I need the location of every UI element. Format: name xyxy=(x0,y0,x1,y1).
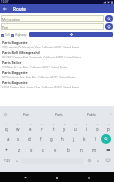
button[interactable]: 2 xyxy=(12,122,24,133)
button[interactable]: 6 xyxy=(59,122,70,133)
button[interactable]: Paris Baggette xyxy=(0,68,114,78)
staticText: l xyxy=(95,136,97,142)
staticText: 918 Lakeside Dr, Mountain View, Californ… xyxy=(2,46,80,48)
staticText: j xyxy=(73,136,75,142)
button[interactable]: Pari xyxy=(1,23,104,30)
button[interactable]: j xyxy=(68,133,79,144)
staticText: Route xyxy=(13,6,26,12)
button[interactable]: h xyxy=(57,133,68,144)
staticText: 1 xyxy=(6,123,8,126)
staticText: 0 xyxy=(108,123,110,126)
button[interactable]: c xyxy=(37,144,49,155)
staticText: Pari xyxy=(23,112,30,116)
button[interactable]: 0 xyxy=(103,122,114,133)
button[interactable]: m xyxy=(88,144,101,155)
staticText: x xyxy=(30,147,33,153)
button[interactable]: b xyxy=(62,144,75,155)
staticText: 9 xyxy=(97,123,99,126)
staticText: 3 xyxy=(30,123,32,126)
staticText: k xyxy=(83,136,86,142)
staticText: Paris Tailor xyxy=(2,60,22,65)
staticText: 7 xyxy=(75,123,77,126)
staticText: 6 xyxy=(64,123,66,126)
button[interactable]: Paris Baguette xyxy=(0,78,114,88)
staticText: u xyxy=(74,126,77,132)
button[interactable]: Back xyxy=(18,173,32,182)
button[interactable]: n xyxy=(75,144,88,155)
button[interactable]: Hide keyboard xyxy=(102,155,114,166)
button[interactable]: Comma xyxy=(13,155,20,166)
staticText: h xyxy=(61,136,64,142)
button[interactable]: 4 xyxy=(36,122,48,133)
staticText: 634 El Camino Real, Santa Clara, Califor… xyxy=(2,86,80,88)
staticText: n xyxy=(80,147,83,153)
button[interactable]: f xyxy=(35,133,46,144)
button[interactable]: 7 xyxy=(70,122,81,133)
button[interactable]: x xyxy=(25,144,37,155)
button[interactable]: My location xyxy=(1,15,104,22)
button[interactable]: z xyxy=(13,144,25,155)
button[interactable]: 3 xyxy=(24,122,36,133)
button[interactable]: l xyxy=(90,133,101,144)
staticText: b xyxy=(67,147,70,153)
button[interactable]: Paris Baguette xyxy=(0,38,114,48)
button[interactable]: Emoji xyxy=(85,155,94,166)
staticText: 2 xyxy=(17,123,19,126)
staticText: g xyxy=(50,136,53,142)
button[interactable]: Period xyxy=(94,155,102,166)
staticText: 300 University Ave, Palo Alto, Californi… xyxy=(2,76,76,78)
button[interactable]: 1 xyxy=(0,122,12,133)
button[interactable]: Back xyxy=(0,4,10,13)
button[interactable]: Recent apps xyxy=(82,173,96,182)
button[interactable]: Set location xyxy=(105,23,113,30)
staticText: z xyxy=(18,147,21,153)
button[interactable]: Pablo xyxy=(75,106,107,122)
button[interactable]: Pari xyxy=(10,106,43,122)
staticText: Paris xyxy=(55,112,63,116)
button[interactable]: Search xyxy=(101,134,111,144)
staticText: My location xyxy=(2,17,20,21)
staticText: a xyxy=(7,136,10,142)
button[interactable]: Voice input xyxy=(0,106,10,122)
staticText: 5 xyxy=(53,123,55,126)
staticText: f xyxy=(40,136,42,142)
staticText: ?123 xyxy=(4,159,10,163)
button[interactable]: 5 xyxy=(48,122,59,133)
staticText: o xyxy=(96,126,99,132)
staticText: Toll xyxy=(5,33,10,37)
button[interactable]: s xyxy=(13,133,24,144)
button[interactable]: Toll xyxy=(1,33,10,37)
staticText: 8 xyxy=(86,123,88,126)
staticText: t xyxy=(53,126,55,132)
staticText: m xyxy=(92,147,97,153)
button[interactable]: 8 xyxy=(81,122,92,133)
button[interactable]: Paris Tailor xyxy=(0,58,114,68)
staticText: 310 Main St, Los Altos, California 94022… xyxy=(2,66,68,68)
button[interactable]: Shift xyxy=(0,144,13,155)
staticText: y xyxy=(63,126,66,132)
staticText: w xyxy=(16,126,20,132)
button[interactable]: d xyxy=(24,133,35,144)
staticText: Paris Baguette xyxy=(2,40,28,45)
staticText: e xyxy=(29,126,32,132)
button[interactable]: Delete xyxy=(101,144,114,155)
staticText: Paris Bell (Mongrachi) xyxy=(2,50,41,55)
button[interactable]: Search xyxy=(105,15,113,22)
button[interactable]: Paris Bell (Mongrachi) xyxy=(0,48,114,58)
button[interactable]: v xyxy=(49,144,62,155)
staticText: p xyxy=(107,126,110,132)
button[interactable]: 9 xyxy=(92,122,103,133)
staticText: d xyxy=(28,136,31,142)
button[interactable]: Paris xyxy=(43,106,75,122)
button[interactable]: Home xyxy=(50,173,64,182)
button[interactable]: a xyxy=(3,133,13,144)
button[interactable]: k xyxy=(79,133,90,144)
button[interactable]: Highway xyxy=(11,33,27,37)
button[interactable]: Get directions xyxy=(29,32,113,37)
button[interactable]: g xyxy=(46,133,57,144)
staticText: v xyxy=(54,147,57,153)
button[interactable]: ?123 xyxy=(0,155,13,166)
staticText: 12:07 xyxy=(1,0,9,4)
